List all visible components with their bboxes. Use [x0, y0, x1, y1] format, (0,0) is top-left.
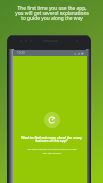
staticText: The first time you use the app, you will… [15, 5, 89, 22]
staticText: We have created an in-app tutorial to he… [27, 147, 77, 155]
staticText: 10:30 [17, 51, 25, 55]
staticText: Want to find out more about the many fea… [21, 135, 82, 143]
button[interactable]: Tutorial [44, 112, 60, 128]
